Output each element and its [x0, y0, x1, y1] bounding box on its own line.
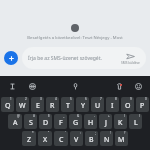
button[interactable]: (: [114, 114, 127, 129]
staticText: P: [140, 101, 145, 111]
button[interactable]: Írja be az SMS-üzenet szövegét.: [22, 47, 146, 69]
button[interactable]: 3: [31, 97, 44, 112]
staticText: M: [118, 135, 125, 145]
staticText: Z: [27, 135, 32, 145]
staticText: ;: [95, 131, 96, 135]
button[interactable]: ?: [115, 131, 128, 146]
staticText: J: [105, 118, 107, 128]
button[interactable]: _: [54, 114, 67, 129]
button[interactable]: -: [84, 114, 97, 129]
button[interactable]: ': [54, 131, 68, 146]
staticText: 6: [85, 97, 87, 101]
staticText: Beszélgetés a következővel: Teszt Névjeg…: [0, 35, 150, 41]
staticText: I: [111, 101, 114, 111]
staticText: V: [74, 135, 79, 145]
button[interactable]: Névjegy: [71, 24, 79, 32]
button[interactable]: &: [69, 114, 82, 129]
button[interactable]: 0: [136, 97, 149, 112]
staticText: 8: [115, 97, 117, 101]
staticText: SMS küldése: [121, 61, 140, 65]
staticText: Írja be az SMS-üzenet szövegét.: [28, 55, 117, 62]
staticText: +: [108, 114, 110, 118]
staticText: C: [59, 135, 64, 145]
button[interactable]: Hangulatjelek: [132, 80, 144, 92]
staticText: 3: [40, 97, 42, 101]
button[interactable]: Hangbevitel: [69, 80, 81, 92]
button[interactable]: Szövegkurzor: [6, 80, 18, 92]
button[interactable]: Matricák: [113, 80, 125, 92]
staticText: 0: [145, 97, 147, 101]
button[interactable]: 5: [61, 97, 74, 112]
staticText: !: [110, 131, 111, 135]
staticText: L: [134, 118, 138, 128]
staticText: H: [88, 118, 94, 128]
button[interactable]: 9: [121, 97, 134, 112]
button[interactable]: Melléklet hozzáadása: [4, 51, 18, 65]
staticText: ": [48, 131, 50, 135]
button[interactable]: *: [22, 131, 36, 146]
staticText: (: [124, 114, 125, 118]
button[interactable]: $: [39, 114, 52, 129]
button[interactable]: ": [38, 131, 52, 146]
button[interactable]: 2: [16, 97, 29, 112]
staticText: Y: [81, 101, 85, 111]
staticText: ?: [124, 131, 126, 135]
staticText: Q: [5, 101, 11, 111]
staticText: :: [80, 131, 81, 135]
button[interactable]: #: [24, 114, 37, 129]
button[interactable]: +: [99, 114, 112, 129]
staticText: W: [19, 101, 26, 111]
staticText: 4: [55, 97, 57, 101]
button[interactable]: 1: [1, 97, 14, 112]
button[interactable]: 6: [76, 97, 89, 112]
staticText: O: [125, 101, 131, 111]
staticText: A: [13, 118, 18, 128]
button[interactable]: Nyelv váltása: [26, 80, 38, 92]
button[interactable]: :: [70, 131, 83, 146]
button[interactable]: !: [100, 131, 113, 146]
staticText: $: [48, 114, 50, 118]
button[interactable]: SMS küldése: [117, 52, 143, 65]
staticText: 2: [25, 97, 27, 101]
button[interactable]: 7: [91, 97, 104, 112]
button[interactable]: ;: [85, 131, 98, 146]
button[interactable]: 8: [106, 97, 119, 112]
staticText: D: [43, 118, 49, 128]
staticText: R: [50, 101, 55, 111]
button[interactable]: ): [129, 114, 142, 129]
staticText: 1: [10, 97, 12, 101]
button[interactable]: 4: [46, 97, 59, 112]
staticText: &: [77, 114, 80, 118]
staticText: *: [32, 131, 34, 135]
staticText: 9: [130, 97, 132, 101]
staticText: 5: [70, 97, 72, 101]
staticText: U: [95, 101, 101, 111]
staticText: N: [104, 135, 110, 145]
staticText: T: [66, 101, 70, 111]
staticText: S: [29, 118, 33, 128]
staticText: K: [118, 118, 123, 128]
staticText: F: [59, 118, 63, 128]
staticText: -: [94, 114, 95, 118]
staticText: @: [17, 114, 20, 118]
staticText: #: [33, 114, 35, 118]
staticText: E: [36, 101, 40, 111]
button[interactable]: @: [8, 114, 22, 129]
staticText: _: [63, 114, 65, 118]
staticText: X: [43, 135, 48, 145]
staticText: B: [89, 135, 94, 145]
staticText: G: [73, 118, 79, 128]
staticText: ': [65, 131, 66, 135]
staticText: ): [139, 114, 140, 118]
staticText: 7: [100, 97, 102, 101]
